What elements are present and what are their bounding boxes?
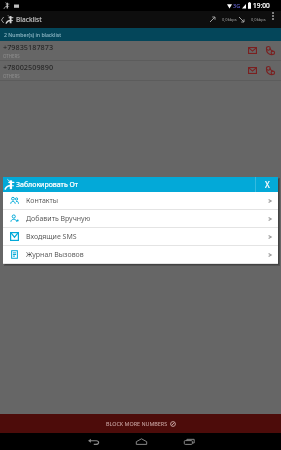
- button[interactable]: Recents: [165, 433, 213, 450]
- button[interactable]: Входящие SMS: [3, 228, 278, 245]
- button[interactable]: Close: [256, 177, 278, 192]
- button[interactable]: Back: [69, 433, 117, 450]
- staticText: +79835187873: [3, 42, 54, 52]
- staticText: Контакты: [26, 196, 59, 206]
- button[interactable]: Home: [117, 433, 165, 450]
- button[interactable]: +79835187873: [0, 41, 281, 60]
- button[interactable]: Call: [261, 61, 279, 80]
- staticText: OTHERS: [3, 53, 20, 59]
- staticText: Входящие SMS: [26, 232, 77, 242]
- button[interactable]: Back: [0, 11, 5, 28]
- staticText: X: [265, 179, 270, 190]
- staticText: 0,0kbps: [222, 17, 237, 22]
- button[interactable]: BLOCK MORE NUMBERS: [0, 414, 281, 433]
- button[interactable]: +78002509890: [0, 61, 281, 80]
- button[interactable]: Добавить Вручную: [3, 210, 278, 227]
- staticText: 19:00: [253, 1, 270, 10]
- staticText: Журнал Вызовов: [26, 250, 84, 260]
- staticText: BLOCK MORE NUMBERS: [106, 420, 168, 427]
- button[interactable]: Send SMS: [243, 41, 261, 60]
- staticText: +78002509890: [3, 62, 54, 72]
- staticText: Blacklist: [16, 15, 42, 24]
- staticText: Заблокировать От: [16, 180, 79, 190]
- staticText: 3G: [233, 2, 241, 9]
- staticText: 0,0kbps: [251, 17, 266, 22]
- button[interactable]: Контакты: [3, 192, 278, 209]
- button[interactable]: Send SMS: [243, 61, 261, 80]
- button[interactable]: Call: [261, 41, 279, 60]
- button[interactable]: More options: [270, 11, 276, 28]
- staticText: 2 Number(s) in blacklist: [4, 31, 62, 38]
- button[interactable]: Журнал Вызовов: [3, 246, 278, 263]
- staticText: Добавить Вручную: [26, 214, 91, 224]
- staticText: OTHERS: [3, 73, 20, 79]
